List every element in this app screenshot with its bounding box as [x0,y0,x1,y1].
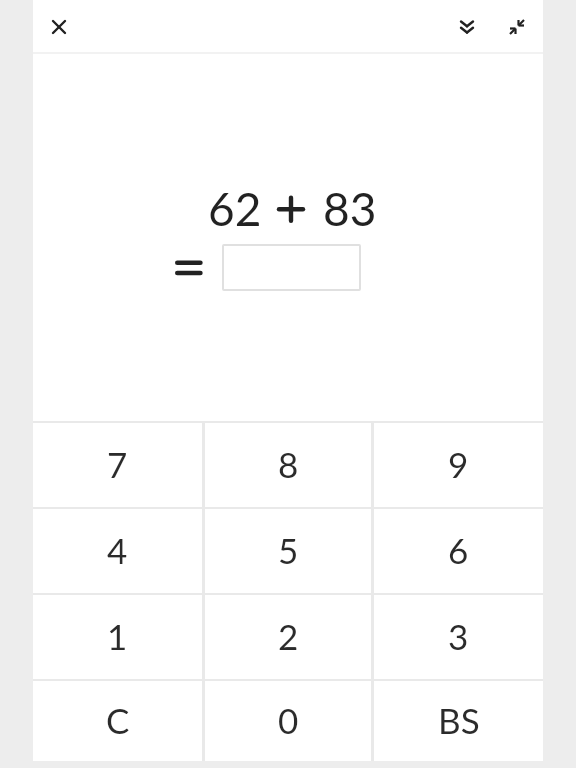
button[interactable]: 1 [33,595,202,679]
staticText: 4 [107,529,128,571]
button[interactable]: 0 [205,681,371,761]
staticText: 9 [448,443,469,485]
button[interactable]: 4 [33,509,202,593]
button[interactable]: 6 [374,509,543,593]
button[interactable] [41,9,77,45]
staticText: 5 [278,529,299,571]
button[interactable] [449,9,485,45]
staticText: BS [438,699,480,741]
staticText: 7 [107,443,128,485]
staticText: 8 [278,443,299,485]
button[interactable]: 2 [205,595,371,679]
staticText: 0 [278,699,299,741]
staticText: 2 [278,615,299,657]
staticText: 83 [323,181,377,236]
button[interactable]: C [33,681,202,761]
staticText: 1 [107,615,128,657]
button[interactable] [222,244,361,291]
staticText: 62 [208,181,262,236]
button[interactable]: 7 [33,423,202,507]
staticText: 6 [448,529,469,571]
button[interactable]: 3 [374,595,543,679]
button[interactable]: 5 [205,509,371,593]
button[interactable]: BS [374,681,543,761]
staticText: C [106,699,130,741]
button[interactable]: 8 [205,423,371,507]
button[interactable]: 9 [374,423,543,507]
button[interactable] [499,9,535,45]
staticText: 3 [448,615,469,657]
